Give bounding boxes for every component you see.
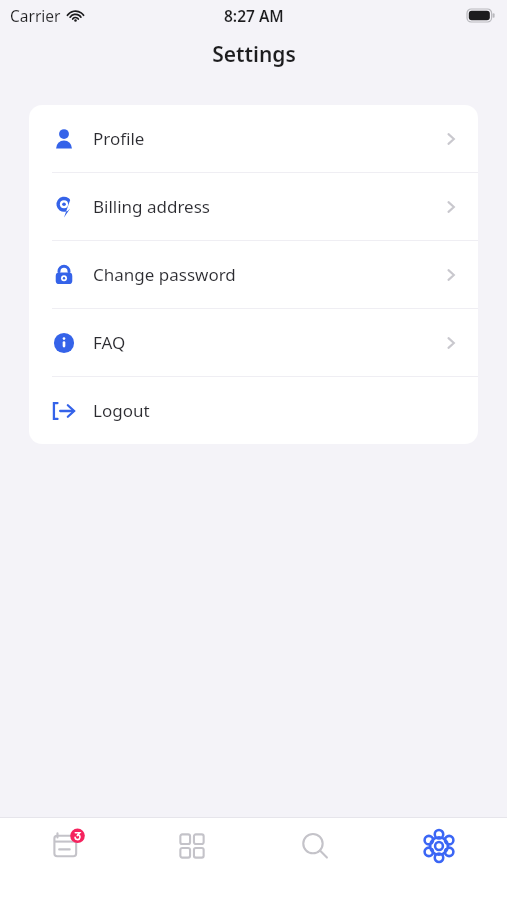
button[interactable]: Change password bbox=[29, 241, 478, 308]
staticText: Carrier bbox=[10, 5, 61, 26]
staticText: 8:27 AM bbox=[224, 5, 284, 26]
button[interactable]: Dashboard bbox=[137, 818, 247, 900]
staticText: Change password bbox=[93, 263, 236, 286]
staticText: Logout bbox=[93, 399, 150, 422]
button[interactable]: Profile bbox=[29, 105, 478, 172]
button[interactable]: Billing address bbox=[29, 173, 478, 240]
staticText: Settings bbox=[212, 40, 296, 69]
staticText: Billing address bbox=[93, 195, 210, 218]
button[interactable]: Logout bbox=[29, 377, 478, 444]
button[interactable]: Search bbox=[260, 818, 370, 900]
button[interactable]: FAQ bbox=[29, 309, 478, 376]
staticText: Profile bbox=[93, 127, 145, 150]
button[interactable]: Settings bbox=[384, 818, 494, 900]
button[interactable]: Calendar bbox=[13, 818, 123, 900]
staticText: FAQ bbox=[93, 331, 126, 354]
